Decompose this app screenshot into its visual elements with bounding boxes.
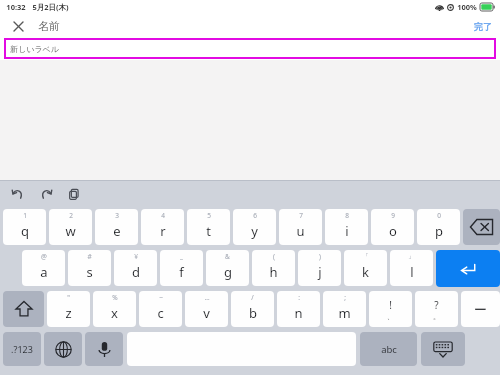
staticText: ー xyxy=(474,301,487,317)
staticText: 6 xyxy=(253,211,257,220)
button[interactable]: クリップボード xyxy=(66,186,82,202)
button[interactable]: .?123 xyxy=(3,332,41,366)
staticText: c xyxy=(157,304,164,322)
button[interactable]: 5 xyxy=(187,209,230,245)
staticText: 名前 xyxy=(38,19,60,33)
staticText: j xyxy=(318,263,322,281)
staticText: y xyxy=(251,222,258,240)
button[interactable]: 2 xyxy=(49,209,92,245)
button[interactable]: … xyxy=(185,291,228,327)
staticText: v xyxy=(203,304,210,322)
staticText: % xyxy=(112,293,118,302)
button[interactable]: _ xyxy=(160,250,203,286)
staticText: 、 xyxy=(387,312,394,321)
button[interactable]: キー xyxy=(85,332,123,366)
button[interactable]: 8 xyxy=(325,209,368,245)
staticText: ( xyxy=(273,252,275,261)
button[interactable]: % xyxy=(93,291,136,327)
staticText: 5月2日(木) xyxy=(32,2,69,12)
button[interactable]: ~ xyxy=(139,291,182,327)
staticText: 100% xyxy=(457,2,477,12)
staticText: ) xyxy=(319,252,321,261)
staticText: e xyxy=(113,222,121,240)
staticText: ? xyxy=(434,298,439,312)
staticText: 3 xyxy=(115,211,119,220)
button[interactable]: キー xyxy=(463,209,500,245)
staticText: 5 xyxy=(207,211,211,220)
button[interactable]: ) xyxy=(298,250,341,286)
staticText: z xyxy=(65,304,72,322)
staticText: 4 xyxy=(161,211,165,220)
button[interactable]: 完了 xyxy=(466,18,500,35)
staticText: n xyxy=(294,304,303,322)
staticText: a xyxy=(40,263,48,281)
button[interactable]: ! xyxy=(369,291,412,327)
staticText: … xyxy=(204,293,210,302)
staticText: b xyxy=(249,304,257,322)
button[interactable]: ( xyxy=(252,250,295,286)
button[interactable]: 6 xyxy=(233,209,276,245)
button[interactable]: 9 xyxy=(371,209,414,245)
staticText: 2 xyxy=(69,211,73,220)
button[interactable]: 1 xyxy=(3,209,46,245)
button[interactable]: キー xyxy=(3,291,44,327)
staticText: & xyxy=(225,252,230,261)
button[interactable]: キー xyxy=(44,332,82,366)
staticText: i xyxy=(345,222,349,240)
staticText: g xyxy=(224,263,232,281)
button[interactable]: ; xyxy=(323,291,366,327)
button[interactable]: 改行 xyxy=(436,250,500,287)
staticText: # xyxy=(87,252,92,261)
button[interactable]: やり直す xyxy=(38,186,54,202)
staticText: _ xyxy=(180,252,183,261)
button[interactable]: 4 xyxy=(141,209,184,245)
button[interactable]: ? xyxy=(415,291,458,327)
staticText: : xyxy=(298,293,300,302)
button[interactable]: 3 xyxy=(95,209,138,245)
staticText: f xyxy=(179,263,184,281)
staticText: 「 xyxy=(362,252,369,260)
button[interactable]: & xyxy=(206,250,249,286)
staticText: / xyxy=(251,293,254,302)
button[interactable]: 0 xyxy=(417,209,460,245)
staticText: 7 xyxy=(299,211,303,220)
button[interactable]: キー xyxy=(421,332,465,366)
button[interactable]: 「 xyxy=(344,250,387,286)
button[interactable]: : xyxy=(277,291,320,327)
staticText: abc xyxy=(381,343,397,356)
staticText: ; xyxy=(344,293,346,302)
button[interactable]: 閉じる xyxy=(8,16,28,36)
button[interactable]: # xyxy=(68,250,111,286)
staticText: u xyxy=(296,222,305,240)
staticText: 0 xyxy=(437,211,441,220)
button[interactable]: 」 xyxy=(390,250,433,286)
staticText: m xyxy=(338,304,351,322)
button[interactable]: abc xyxy=(360,332,417,366)
staticText: w xyxy=(65,222,76,240)
staticText: x xyxy=(111,304,118,322)
staticText: 。 xyxy=(433,312,440,321)
staticText: t xyxy=(206,222,211,240)
staticText: o xyxy=(389,222,397,240)
button[interactable]: 元に戻す xyxy=(10,186,26,202)
staticText: s xyxy=(86,263,93,281)
staticText: 新しいラベル xyxy=(10,44,59,54)
button[interactable]: 7 xyxy=(279,209,322,245)
staticText: 10:32 xyxy=(6,2,26,12)
button[interactable]: / xyxy=(231,291,274,327)
button[interactable]: 長音 xyxy=(461,291,500,327)
staticText: 1 xyxy=(23,211,27,220)
staticText: ! xyxy=(389,298,392,312)
button[interactable]: ¥ xyxy=(114,250,157,286)
button[interactable]: @ xyxy=(22,250,65,286)
staticText: q xyxy=(21,222,29,240)
staticText: " xyxy=(67,293,70,302)
staticText: d xyxy=(132,263,140,281)
staticText: 」 xyxy=(408,252,415,260)
staticText: @ xyxy=(41,252,47,261)
staticText: p xyxy=(435,222,443,240)
staticText: 完了 xyxy=(474,21,492,32)
button[interactable]: " xyxy=(47,291,90,327)
button[interactable]: 新しいラベル xyxy=(4,38,496,59)
